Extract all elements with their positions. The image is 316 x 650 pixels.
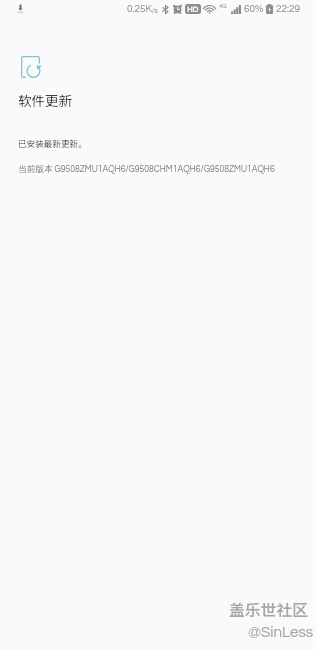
staticText: 22:29	[276, 4, 301, 14]
staticText: 已安装最新更新。	[18, 137, 87, 149]
staticText: /s	[152, 7, 158, 14]
staticText: 当前版本 G9508ZMU1AQH6/G9508CHM1AQH6/G9508ZM…	[18, 164, 275, 175]
button[interactable]: Software update	[0, 44, 316, 184]
other: Software update	[21, 56, 40, 78]
other: Mobile signal	[231, 5, 241, 14]
other: Wi-Fi connected	[204, 5, 215, 14]
other: Battery 60 percent, charging	[266, 4, 273, 14]
other: Downloading	[17, 4, 24, 13]
staticText: 60%	[244, 4, 264, 14]
staticText: @SinLess	[248, 625, 314, 641]
other: Bluetooth on	[162, 5, 169, 14]
staticText: 软件更新	[18, 90, 72, 110]
staticText: HD	[187, 5, 199, 13]
staticText: 0.25K	[127, 4, 152, 14]
other: Alarm set	[173, 4, 182, 13]
staticText: 盖乐世社区	[229, 598, 308, 621]
staticText: 4G	[219, 3, 227, 9]
